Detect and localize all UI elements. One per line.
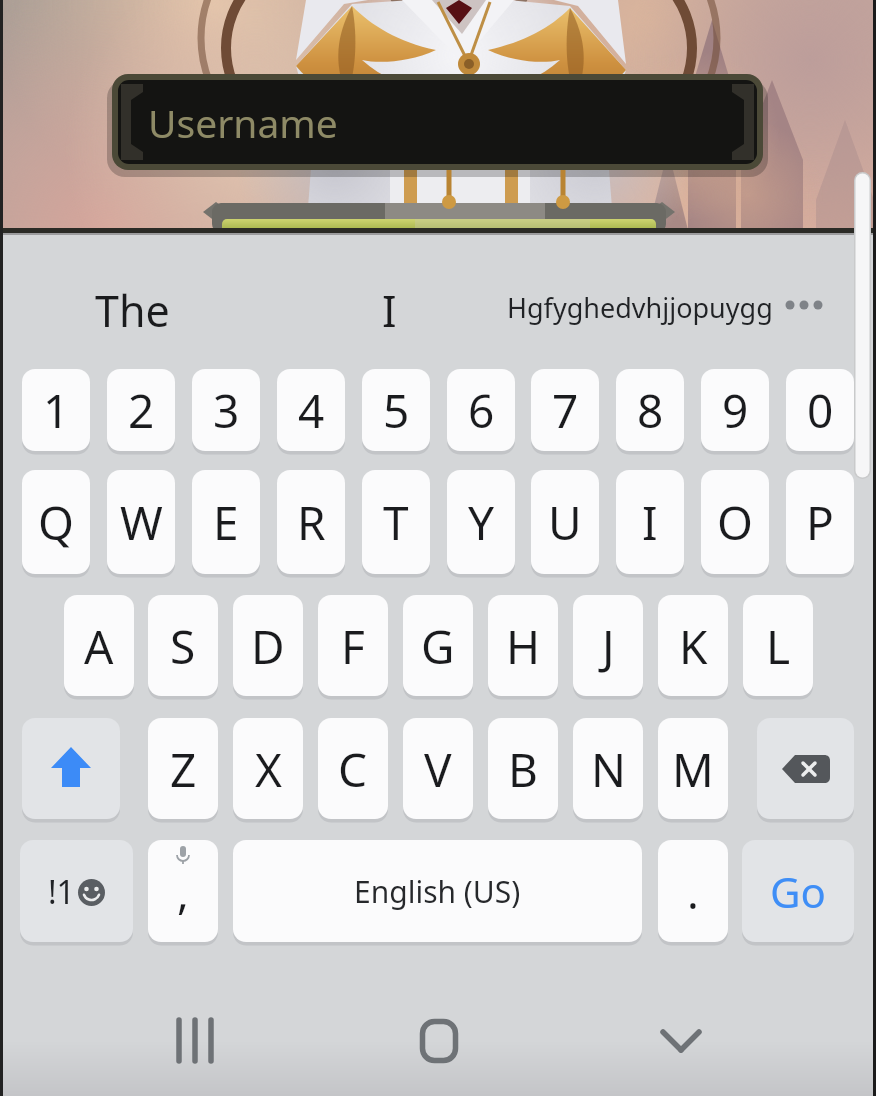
button[interactable]: 5 xyxy=(362,369,430,452)
staticText: 5 xyxy=(383,379,410,442)
button[interactable]: G xyxy=(403,595,473,697)
button[interactable]: R xyxy=(277,470,345,575)
staticText: M xyxy=(672,738,714,801)
staticText: R xyxy=(297,491,326,554)
button[interactable]: The xyxy=(95,281,170,340)
staticText: P xyxy=(806,491,834,554)
staticText: 9 xyxy=(722,379,749,442)
button[interactable]: V xyxy=(403,718,473,820)
staticText: A xyxy=(84,615,114,678)
button[interactable]: , xyxy=(148,840,218,943)
button[interactable]: E xyxy=(192,470,260,575)
button[interactable]: L xyxy=(743,595,813,697)
button[interactable]: D xyxy=(233,595,303,697)
button[interactable] xyxy=(783,298,827,312)
button[interactable] xyxy=(420,1019,460,1063)
button[interactable]: H xyxy=(488,595,558,697)
button[interactable]: F xyxy=(318,595,388,697)
staticText: 2 xyxy=(128,379,155,442)
staticText: . xyxy=(687,862,699,922)
button[interactable]: 6 xyxy=(447,369,515,452)
staticText: 0 xyxy=(807,379,834,442)
staticText: S xyxy=(170,615,196,678)
button[interactable] xyxy=(661,1028,701,1056)
staticText: T xyxy=(383,491,409,554)
staticText: I xyxy=(382,281,397,340)
button[interactable]: Go xyxy=(742,840,854,943)
staticText: J xyxy=(602,615,615,678)
staticText: 3 xyxy=(213,379,240,442)
staticText: I xyxy=(642,491,658,554)
staticText: D xyxy=(251,615,285,678)
button[interactable]: 4 xyxy=(277,369,345,452)
button[interactable]: 2 xyxy=(107,369,175,452)
staticText: W xyxy=(120,491,163,554)
button[interactable]: N xyxy=(573,718,643,820)
button[interactable] xyxy=(22,718,120,820)
button[interactable]: U xyxy=(531,470,599,575)
button[interactable] xyxy=(176,1018,216,1063)
button[interactable]: 3 xyxy=(192,369,260,452)
staticText: The xyxy=(95,281,170,340)
button[interactable]: W xyxy=(107,470,175,575)
staticText: Y xyxy=(468,491,495,554)
button[interactable]: !1 xyxy=(20,840,133,943)
staticText: B xyxy=(508,738,538,801)
staticText: C xyxy=(338,738,368,801)
button[interactable]: Y xyxy=(447,470,515,575)
button[interactable]: A xyxy=(64,595,134,697)
button[interactable]: 1 xyxy=(22,369,90,452)
staticText: 4 xyxy=(298,379,325,442)
staticText: !1 xyxy=(48,870,75,914)
button[interactable]: O xyxy=(701,470,769,575)
staticText: 1 xyxy=(43,379,70,442)
staticText: N xyxy=(591,738,626,801)
staticText: L xyxy=(766,615,791,678)
staticText: F xyxy=(341,615,365,678)
button[interactable] xyxy=(757,718,854,820)
staticText: X xyxy=(255,738,282,801)
staticText: V xyxy=(424,738,452,801)
staticText: , xyxy=(177,862,189,922)
button[interactable]: C xyxy=(318,718,388,820)
staticText: H xyxy=(506,615,541,678)
button[interactable] xyxy=(212,202,666,233)
button[interactable]: K xyxy=(658,595,728,697)
staticText: Z xyxy=(170,738,197,801)
button[interactable]: I xyxy=(382,281,397,340)
staticText: Username xyxy=(148,96,338,149)
button[interactable]: S xyxy=(148,595,218,697)
button[interactable]: P xyxy=(786,470,854,575)
staticText: E xyxy=(213,491,239,554)
staticText: 6 xyxy=(468,379,495,442)
button[interactable]: M xyxy=(658,718,728,820)
staticText: G xyxy=(421,615,455,678)
button[interactable]: J xyxy=(573,595,643,697)
staticText: 7 xyxy=(552,379,579,442)
button[interactable]: Username xyxy=(112,74,763,170)
button[interactable]: 7 xyxy=(531,369,599,452)
staticText: Go xyxy=(770,863,826,920)
staticText: Q xyxy=(38,491,74,554)
button[interactable]: 9 xyxy=(701,369,769,452)
button[interactable]: I xyxy=(616,470,684,575)
staticText: K xyxy=(679,615,708,678)
button[interactable]: B xyxy=(488,718,558,820)
button[interactable]: Q xyxy=(22,470,90,575)
button[interactable]: . xyxy=(658,840,728,943)
staticText: U xyxy=(548,491,582,554)
staticText: 8 xyxy=(637,379,664,442)
button[interactable]: Hgfyghedvhjjopuygg xyxy=(507,289,773,326)
button[interactable]: Z xyxy=(148,718,218,820)
button[interactable]: English (US) xyxy=(233,840,642,943)
button[interactable]: X xyxy=(233,718,303,820)
button[interactable]: T xyxy=(362,470,430,575)
staticText: English (US) xyxy=(354,871,521,912)
button[interactable]: 8 xyxy=(616,369,684,452)
staticText: Hgfyghedvhjjopuygg xyxy=(507,289,773,326)
button[interactable]: 0 xyxy=(786,369,854,452)
staticText: O xyxy=(717,491,753,554)
